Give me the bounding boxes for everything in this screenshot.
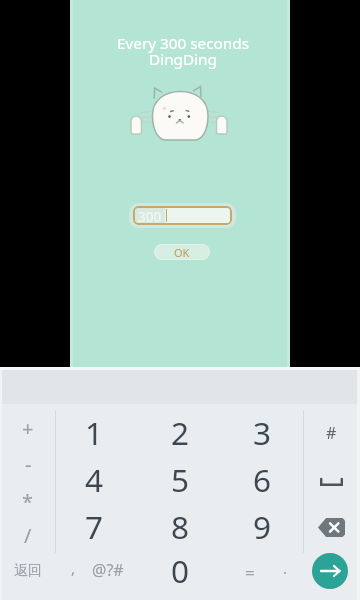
staticText: 300 bbox=[138, 208, 162, 223]
button[interactable]: 9 bbox=[237, 505, 287, 545]
staticText: 5 bbox=[171, 458, 190, 498]
button[interactable]: 1 bbox=[69, 411, 119, 451]
staticText: Every 300 seconds DingDing bbox=[117, 33, 249, 70]
button[interactable]: 300 bbox=[133, 206, 232, 225]
staticText: . bbox=[283, 558, 288, 578]
staticText: @?# bbox=[92, 559, 124, 581]
button[interactable]: OK bbox=[154, 244, 210, 260]
button[interactable]: . bbox=[260, 548, 310, 588]
staticText: 8 bbox=[171, 505, 190, 545]
staticText: 9 bbox=[253, 505, 272, 545]
staticText: = bbox=[245, 561, 255, 584]
button[interactable]: 4 bbox=[69, 458, 119, 498]
staticText: * bbox=[22, 488, 34, 515]
staticText: 4 bbox=[85, 458, 104, 498]
button[interactable]: @?# bbox=[83, 550, 133, 590]
staticText: 1 bbox=[85, 411, 104, 451]
button[interactable]: 2 bbox=[155, 411, 205, 451]
staticText: 0 bbox=[171, 549, 190, 589]
button[interactable]: 8 bbox=[155, 505, 205, 545]
button[interactable]: 5 bbox=[155, 458, 205, 498]
button[interactable]: + bbox=[3, 408, 53, 448]
button[interactable]: Backspace bbox=[306, 508, 356, 546]
button[interactable]: 0 bbox=[155, 549, 205, 589]
button[interactable]: Enter bbox=[312, 553, 348, 589]
button[interactable]: 返回 bbox=[3, 551, 53, 591]
staticText: 3 bbox=[253, 411, 272, 451]
button[interactable]: - bbox=[3, 444, 53, 484]
staticText: / bbox=[24, 522, 32, 549]
staticText: + bbox=[22, 415, 34, 442]
button[interactable]: = bbox=[225, 552, 275, 592]
staticText: # bbox=[326, 422, 337, 444]
staticText: 2 bbox=[171, 411, 190, 451]
button[interactable]: # bbox=[306, 413, 356, 453]
staticText: - bbox=[25, 451, 32, 478]
staticText: OK bbox=[174, 245, 190, 260]
button[interactable]: * bbox=[3, 481, 53, 521]
staticText: 7 bbox=[85, 505, 104, 545]
button[interactable]: 3 bbox=[237, 411, 287, 451]
staticText: , bbox=[71, 558, 76, 578]
staticText: 6 bbox=[253, 458, 272, 498]
button[interactable]: Space bbox=[306, 462, 356, 502]
button[interactable]: / bbox=[3, 515, 53, 555]
button[interactable]: 6 bbox=[237, 458, 287, 498]
button[interactable]: , bbox=[48, 548, 98, 588]
button[interactable]: 7 bbox=[69, 505, 119, 545]
staticText: 返回 bbox=[14, 562, 42, 580]
